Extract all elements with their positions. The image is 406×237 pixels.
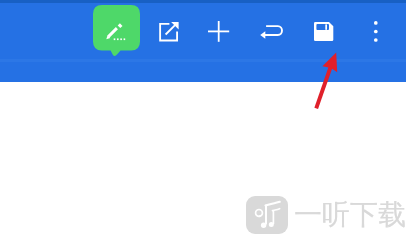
button[interactable]: Edit — [93, 5, 140, 56]
button[interactable]: Add — [197, 9, 241, 53]
staticText: 一听下载 — [294, 197, 406, 232]
button[interactable]: Save — [302, 9, 346, 53]
button[interactable]: More options — [354, 9, 398, 53]
button[interactable]: Undo — [250, 9, 294, 53]
button[interactable]: Open in new — [147, 9, 191, 53]
